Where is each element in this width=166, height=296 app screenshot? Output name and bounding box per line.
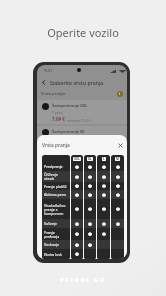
staticText: XL bbox=[88, 157, 92, 161]
staticText: Visokotlačno pranje s šamponom bbox=[44, 203, 68, 216]
staticText: Ekstra lesk bbox=[44, 252, 62, 257]
staticText: Pranje platišč bbox=[44, 184, 67, 189]
staticText: Predpranje bbox=[44, 164, 63, 169]
staticText: Šamponiranje M bbox=[52, 129, 85, 135]
staticText: namesto 8.10 € bbox=[67, 144, 91, 148]
staticText: PETROL GO bbox=[0, 276, 166, 284]
staticText: 7.09 € bbox=[52, 116, 65, 122]
staticText: Aktivna pena bbox=[44, 192, 66, 197]
staticText: Vrsta pranja bbox=[42, 142, 70, 149]
staticText: Voskanje bbox=[44, 242, 60, 247]
staticText: Sušenje bbox=[44, 221, 58, 226]
staticText: Pranje podvozja bbox=[44, 230, 68, 239]
button[interactable]: Šamponiranje XXL bbox=[41, 100, 123, 124]
staticText: Izaberite vrstu pranja bbox=[50, 79, 104, 86]
staticText: Vrsta pranja bbox=[41, 91, 65, 97]
staticText: i bbox=[119, 91, 121, 97]
other: Back bbox=[41, 80, 46, 85]
staticText: namesto 10.2 € bbox=[67, 118, 91, 122]
staticText: Šamponiranje XXL bbox=[52, 103, 88, 109]
staticText: Operite vozilo bbox=[0, 25, 166, 40]
button[interactable]: Info bbox=[117, 91, 123, 97]
staticText: XXL bbox=[74, 157, 80, 161]
button[interactable]: Close bbox=[118, 143, 123, 148]
staticText: M bbox=[116, 157, 119, 161]
staticText: 7 pranj bbox=[52, 110, 64, 115]
staticText: Čiščenje obrob bbox=[44, 172, 68, 181]
staticText: L bbox=[103, 157, 105, 161]
staticText: 5.49 € bbox=[52, 142, 65, 148]
button[interactable]: Šamponiranje M bbox=[41, 126, 123, 150]
staticText: 9:41 bbox=[44, 68, 53, 74]
button[interactable]: Back bbox=[37, 76, 127, 88]
